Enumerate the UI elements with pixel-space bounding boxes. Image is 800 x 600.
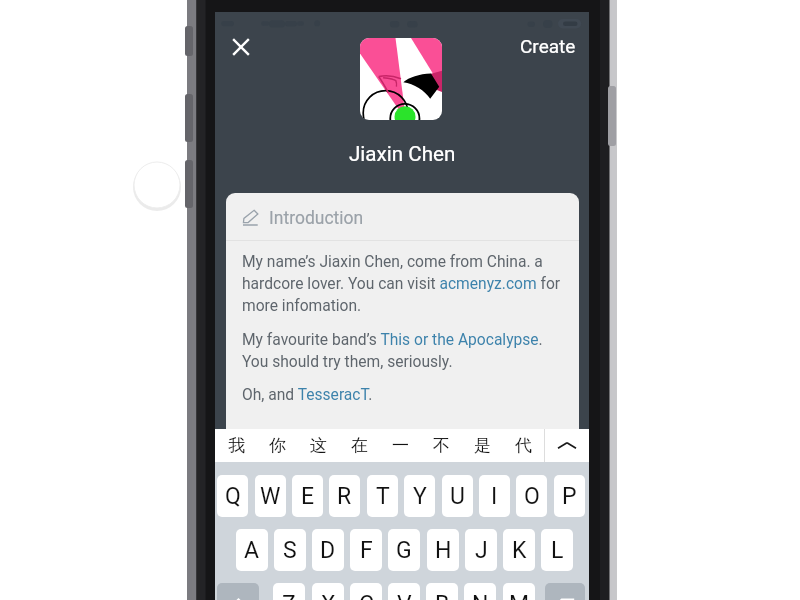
button[interactable]: F: [350, 529, 382, 571]
staticText: 这: [310, 435, 327, 456]
button[interactable]: 这: [298, 429, 339, 462]
button[interactable]: 你: [257, 429, 298, 462]
staticText: P: [562, 483, 577, 510]
staticText: A: [244, 537, 260, 564]
button[interactable]: 我: [215, 429, 257, 462]
button[interactable]: Introduction: [226, 193, 579, 240]
button[interactable]: P: [554, 475, 585, 517]
staticText: 代: [515, 435, 532, 456]
button[interactable]: 是: [462, 429, 503, 462]
staticText: T: [376, 483, 390, 510]
staticText: 在: [351, 435, 368, 456]
staticText: H: [435, 537, 452, 564]
staticText: Jiaxin Chen: [349, 142, 456, 166]
staticText: 你: [269, 435, 286, 456]
button[interactable]: B: [426, 583, 458, 600]
button[interactable]: Expand candidates: [545, 429, 589, 462]
button[interactable]: L: [541, 529, 573, 571]
button[interactable]: Profile picture: [360, 38, 442, 120]
staticText: V: [397, 591, 412, 600]
staticText: My favourite band’s This or the Apocalyp…: [242, 331, 567, 371]
staticText: G: [396, 537, 412, 564]
button[interactable]: V: [388, 583, 420, 600]
staticText: I: [491, 483, 498, 510]
button[interactable]: Y: [404, 475, 435, 517]
staticText: Create: [520, 35, 576, 57]
button[interactable]: Close: [225, 31, 257, 63]
button[interactable]: Key: [217, 583, 259, 600]
button[interactable]: U: [442, 475, 473, 517]
button[interactable]: I: [479, 475, 510, 517]
button[interactable]: Create: [514, 30, 582, 62]
staticText: S: [283, 537, 297, 564]
button[interactable]: K: [503, 529, 535, 571]
staticText: 我: [228, 435, 245, 456]
button[interactable]: H: [427, 529, 459, 571]
button[interactable]: J: [465, 529, 497, 571]
staticText: C: [359, 591, 374, 600]
button[interactable]: E: [292, 475, 323, 517]
staticText: J: [475, 537, 488, 564]
button[interactable]: S: [274, 529, 306, 571]
staticText: Oh, and TesseracT.: [242, 386, 373, 404]
staticText: Z: [282, 591, 296, 600]
button[interactable]: 一: [380, 429, 421, 462]
button[interactable]: O: [516, 475, 547, 517]
button[interactable]: 代: [503, 429, 544, 462]
staticText: W: [260, 483, 281, 510]
button[interactable]: A: [236, 529, 268, 571]
staticText: B: [435, 591, 450, 600]
button[interactable]: Z: [273, 583, 305, 600]
staticText: Q: [225, 483, 241, 510]
staticText: U: [450, 483, 465, 510]
staticText: D: [320, 537, 336, 564]
button[interactable]: 在: [339, 429, 380, 462]
staticText: X: [321, 591, 336, 600]
button[interactable]: T: [367, 475, 398, 517]
staticText: N: [472, 591, 489, 600]
staticText: 不: [433, 435, 450, 456]
staticText: M: [509, 591, 530, 600]
button[interactable]: W: [255, 475, 286, 517]
button[interactable]: C: [350, 583, 382, 600]
button[interactable]: R: [329, 475, 360, 517]
staticText: E: [301, 483, 315, 510]
staticText: O: [524, 483, 540, 510]
staticText: My name’s Jiaxin Chen, come from China. …: [242, 253, 567, 315]
staticText: R: [337, 483, 352, 510]
staticText: L: [551, 537, 564, 564]
button[interactable]: Q: [217, 475, 248, 517]
button[interactable]: D: [312, 529, 344, 571]
button[interactable]: 不: [421, 429, 462, 462]
staticText: Introduction: [269, 208, 364, 229]
button[interactable]: Key: [545, 583, 585, 600]
button[interactable]: X: [312, 583, 344, 600]
staticText: K: [512, 537, 527, 564]
staticText: F: [360, 537, 373, 564]
staticText: 是: [474, 435, 491, 456]
button[interactable]: M: [503, 583, 535, 600]
staticText: 一: [392, 435, 409, 456]
button[interactable]: N: [464, 583, 496, 600]
button[interactable]: G: [388, 529, 420, 571]
staticText: Y: [413, 483, 427, 510]
